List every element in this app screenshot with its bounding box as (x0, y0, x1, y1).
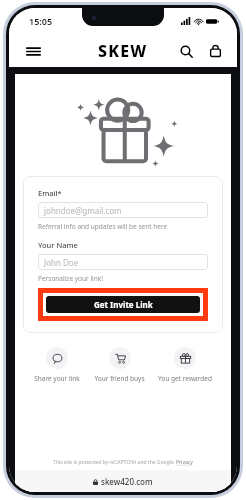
staticText: This site is protected by reCAPTCHA and … (53, 459, 176, 466)
button[interactable]: skew420.com (15, 470, 231, 492)
staticText: Email* (38, 188, 62, 198)
button[interactable]: Your friend buys (93, 347, 146, 383)
staticText: johndoe@gmail.com (44, 205, 122, 216)
staticText: skew420.com (101, 476, 153, 487)
staticText: 15:05 (29, 15, 53, 27)
staticText: Your friend buys (94, 374, 145, 383)
button[interactable]: John Doe (38, 254, 208, 270)
staticText: You get rewarded (158, 374, 212, 383)
staticText: Referral info and updates will be sent h… (38, 222, 168, 231)
staticText: John Doe (44, 257, 79, 268)
staticText: Your Name (38, 240, 78, 250)
button[interactable]: You get rewarded (157, 347, 213, 383)
button[interactable]: Get Invite Link (46, 296, 200, 313)
button[interactable]: Share your link (33, 347, 81, 383)
staticText: Share your link (34, 374, 80, 383)
button[interactable]: Privacy (176, 459, 193, 466)
staticText: Personalize your link! (38, 274, 103, 283)
button[interactable]: Menu (22, 40, 44, 62)
button[interactable]: Cart (204, 40, 226, 62)
staticText: SKEW (98, 40, 148, 62)
staticText: Get Invite Link (94, 299, 153, 310)
button[interactable]: Search (175, 40, 197, 62)
button[interactable]: johndoe@gmail.com (38, 202, 208, 218)
